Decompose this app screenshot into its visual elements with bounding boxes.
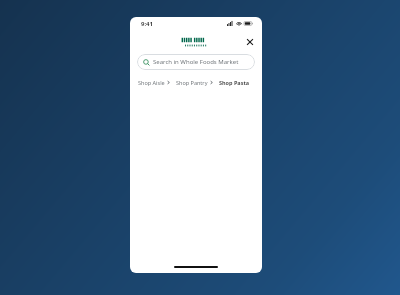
staticText: Shop Pantry — [176, 79, 208, 86]
button[interactable]: Whole Foods Market — [177, 35, 215, 49]
button[interactable]: Shop Pantry — [176, 78, 213, 87]
staticText: Shop Pasta — [219, 79, 250, 86]
staticText: Search in Whole Foods Market — [153, 58, 239, 66]
button[interactable]: Close — [243, 35, 257, 49]
button[interactable]: Shop Pasta — [219, 78, 250, 87]
staticText: Shop Aisle — [138, 79, 165, 86]
button[interactable]: Search in Whole Foods Market — [137, 54, 255, 70]
staticText: 9:41 — [141, 20, 153, 28]
button[interactable]: Shop Aisle — [138, 78, 170, 87]
